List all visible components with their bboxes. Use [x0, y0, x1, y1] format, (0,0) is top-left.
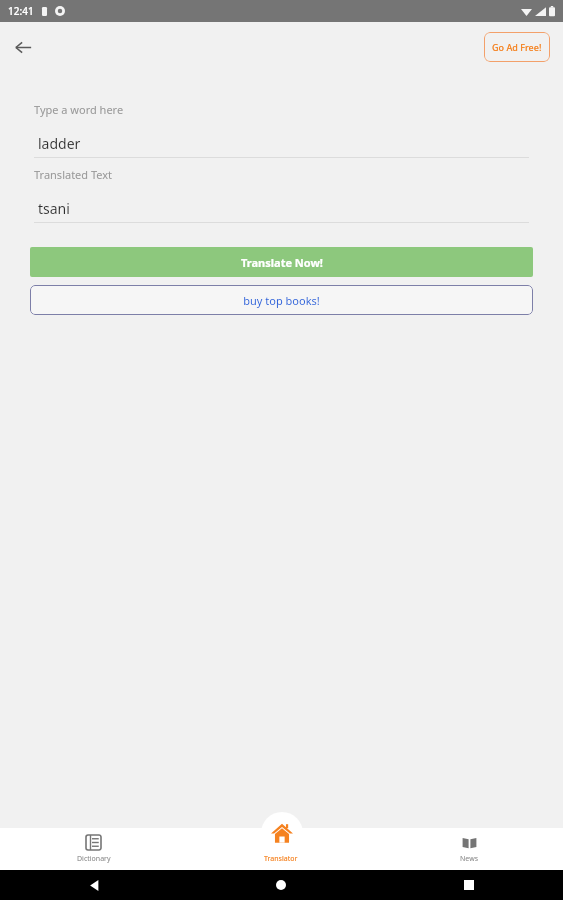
staticText: Translator: [264, 854, 298, 864]
staticText: Dictionary: [77, 854, 111, 864]
staticText: Go Ad Free!: [492, 41, 542, 53]
button[interactable]: Back: [4, 28, 42, 66]
button[interactable]: buy top books!: [30, 285, 533, 315]
staticText: tsani: [38, 199, 70, 218]
button[interactable]: Recents: [456, 872, 482, 898]
button[interactable]: Home: [268, 872, 294, 898]
button[interactable]: tsani: [34, 194, 529, 222]
button[interactable]: Back: [81, 872, 107, 898]
button[interactable]: Dictionary: [0, 828, 187, 870]
staticText: buy top books!: [243, 293, 320, 308]
button[interactable]: News: [375, 828, 563, 870]
staticText: Translated Text: [34, 167, 113, 182]
button[interactable]: Go Ad Free!: [484, 32, 550, 62]
staticText: ladder: [38, 134, 81, 153]
staticText: 12:41: [8, 4, 34, 18]
button[interactable]: Translator: [187, 828, 375, 870]
staticText: Translate Now!: [241, 255, 323, 270]
button[interactable]: Translator: [261, 812, 303, 854]
staticText: Type a word here: [34, 102, 124, 117]
staticText: News: [460, 854, 478, 864]
button[interactable]: Translate Now!: [30, 247, 533, 277]
button[interactable]: ladder: [34, 129, 529, 157]
